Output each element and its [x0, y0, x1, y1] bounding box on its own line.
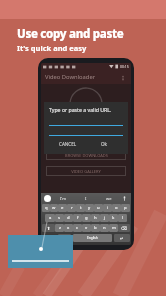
button[interactable]	[8, 235, 73, 268]
staticText: x	[67, 225, 70, 231]
staticText: c	[76, 225, 79, 231]
button[interactable]: e	[58, 204, 67, 212]
button[interactable]: I	[74, 193, 97, 203]
staticText: ⌫	[121, 226, 127, 231]
staticText: g	[85, 215, 88, 221]
button[interactable]: g	[82, 214, 91, 222]
button[interactable]: j	[100, 214, 109, 222]
button[interactable]: we	[97, 193, 120, 203]
button[interactable]: t	[76, 204, 85, 212]
button[interactable]: d	[64, 214, 73, 222]
staticText: l	[122, 215, 124, 221]
staticText: a	[49, 215, 52, 221]
staticText: v	[85, 225, 88, 231]
staticText: Ok	[101, 141, 108, 147]
staticText: w	[52, 205, 56, 211]
button[interactable]: p	[121, 204, 130, 212]
staticText: u	[97, 205, 100, 211]
staticText: Use copy and paste	[17, 26, 124, 42]
button[interactable]: q	[42, 204, 50, 212]
staticText: q	[45, 205, 48, 211]
button[interactable]: BROWSE DOWNLOADS	[46, 150, 126, 160]
button[interactable]: I'm	[51, 193, 74, 203]
staticText: k	[112, 215, 115, 221]
button[interactable]: h	[91, 214, 100, 222]
button[interactable]: a	[45, 214, 55, 222]
staticText: h	[94, 215, 97, 221]
staticText: d	[67, 215, 70, 221]
button[interactable]: English	[73, 234, 112, 242]
button[interactable]: m	[109, 224, 118, 232]
staticText: we	[106, 196, 112, 201]
staticText: j	[104, 215, 106, 221]
button[interactable]: w	[50, 204, 58, 212]
button[interactable]: o	[112, 204, 121, 212]
staticText: CANCEL	[59, 141, 77, 147]
button[interactable]: l	[118, 214, 127, 222]
button[interactable]: b	[91, 224, 100, 232]
button[interactable]	[49, 130, 123, 136]
staticText: t	[80, 205, 82, 211]
staticText: p	[124, 205, 127, 211]
button[interactable]: ?123	[58, 234, 71, 242]
staticText: z	[59, 225, 61, 231]
staticText: ⬆	[47, 226, 51, 231]
staticText: Video Downloader	[45, 73, 96, 81]
button[interactable]: Emoji	[44, 195, 51, 202]
staticText: ↵	[120, 236, 124, 241]
staticText: f	[77, 215, 79, 221]
staticText: s	[58, 215, 61, 221]
button[interactable]: ⬆	[42, 224, 55, 232]
staticText: 00:15	[120, 64, 129, 69]
staticText: Type or paste a valid URL.	[49, 106, 112, 113]
staticText: y	[88, 205, 91, 211]
staticText: BROWSE DOWNLOADS	[65, 153, 108, 158]
button[interactable]: z	[55, 224, 64, 232]
button[interactable]: CANCEL	[49, 138, 86, 150]
button[interactable]: v	[82, 224, 91, 232]
button[interactable]: u	[94, 204, 103, 212]
button[interactable]: ↵	[114, 234, 130, 242]
button[interactable]: k	[109, 214, 118, 222]
button[interactable]: y	[85, 204, 94, 212]
staticText: i	[107, 205, 109, 211]
button[interactable]: ⌫	[118, 224, 130, 232]
button[interactable]: VIDEO GALLERY	[46, 166, 126, 176]
button[interactable]: n	[100, 224, 109, 232]
button[interactable]: Voice input	[120, 193, 128, 203]
button[interactable]	[49, 119, 123, 126]
button[interactable]: Ok	[86, 138, 123, 150]
button[interactable]: s	[55, 214, 64, 222]
staticText: VIDEO GALLERY	[71, 169, 101, 174]
button[interactable]: c	[73, 224, 82, 232]
staticText: I'm	[60, 196, 66, 201]
staticText: English	[87, 236, 98, 240]
button[interactable]: x	[64, 224, 73, 232]
staticText: b	[94, 225, 97, 231]
button[interactable]: i	[103, 204, 112, 212]
button[interactable]: r	[67, 204, 76, 212]
staticText: o	[115, 205, 118, 211]
staticText: r	[71, 205, 73, 211]
staticText: I	[85, 196, 87, 201]
staticText: It's quick and easy	[17, 43, 87, 53]
staticText: n	[103, 225, 106, 231]
button[interactable]: f	[73, 214, 82, 222]
staticText: m	[112, 225, 116, 231]
staticText: e	[61, 205, 64, 211]
button[interactable]: More options	[118, 73, 127, 82]
